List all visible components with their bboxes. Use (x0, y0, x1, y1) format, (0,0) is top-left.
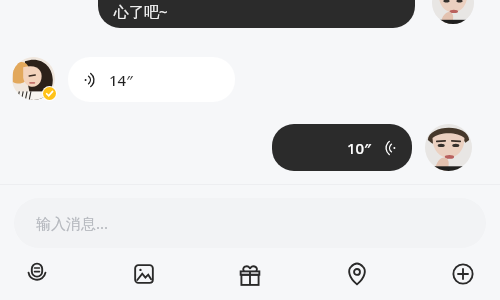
staticText: 输入消息... (36, 213, 109, 233)
button[interactable]: More options (440, 251, 486, 297)
button[interactable]: 心了吧~ (98, 0, 415, 28)
button[interactable]: 14″ (68, 57, 235, 102)
staticText: 10″ (347, 138, 371, 158)
staticText: 心了吧~ (114, 1, 168, 21)
button[interactable]: Send gift (227, 251, 273, 297)
button[interactable]: Send image (121, 251, 167, 297)
staticText: 14″ (109, 70, 133, 90)
button[interactable]: Send location (334, 251, 380, 297)
button[interactable]: 输入消息... (14, 198, 486, 248)
button[interactable]: Voice message (14, 251, 60, 297)
button[interactable]: 10″ (272, 124, 412, 171)
